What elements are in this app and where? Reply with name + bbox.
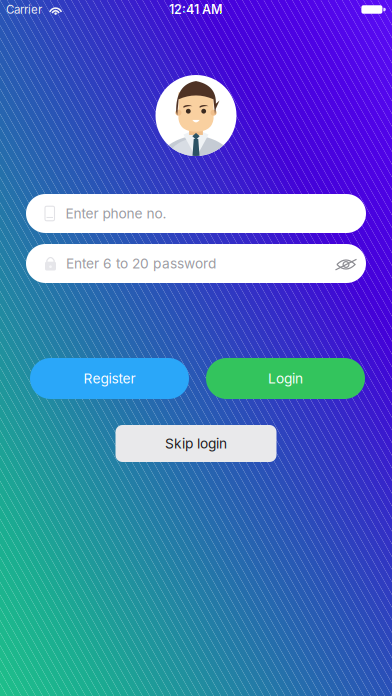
staticText: Enter phone no. xyxy=(65,205,166,222)
button[interactable]: Skip login xyxy=(115,425,276,462)
staticText: Carrier xyxy=(6,3,42,16)
staticText: Login xyxy=(268,370,303,387)
staticText: 12:41 AM xyxy=(169,2,223,17)
staticText: Skip login xyxy=(165,435,227,452)
staticText: Enter 6 to 20 password xyxy=(66,255,216,272)
staticText: Register xyxy=(83,370,135,387)
button[interactable]: Login xyxy=(206,358,365,399)
button[interactable]: Show password xyxy=(328,248,366,278)
button[interactable]: Register xyxy=(30,358,189,399)
